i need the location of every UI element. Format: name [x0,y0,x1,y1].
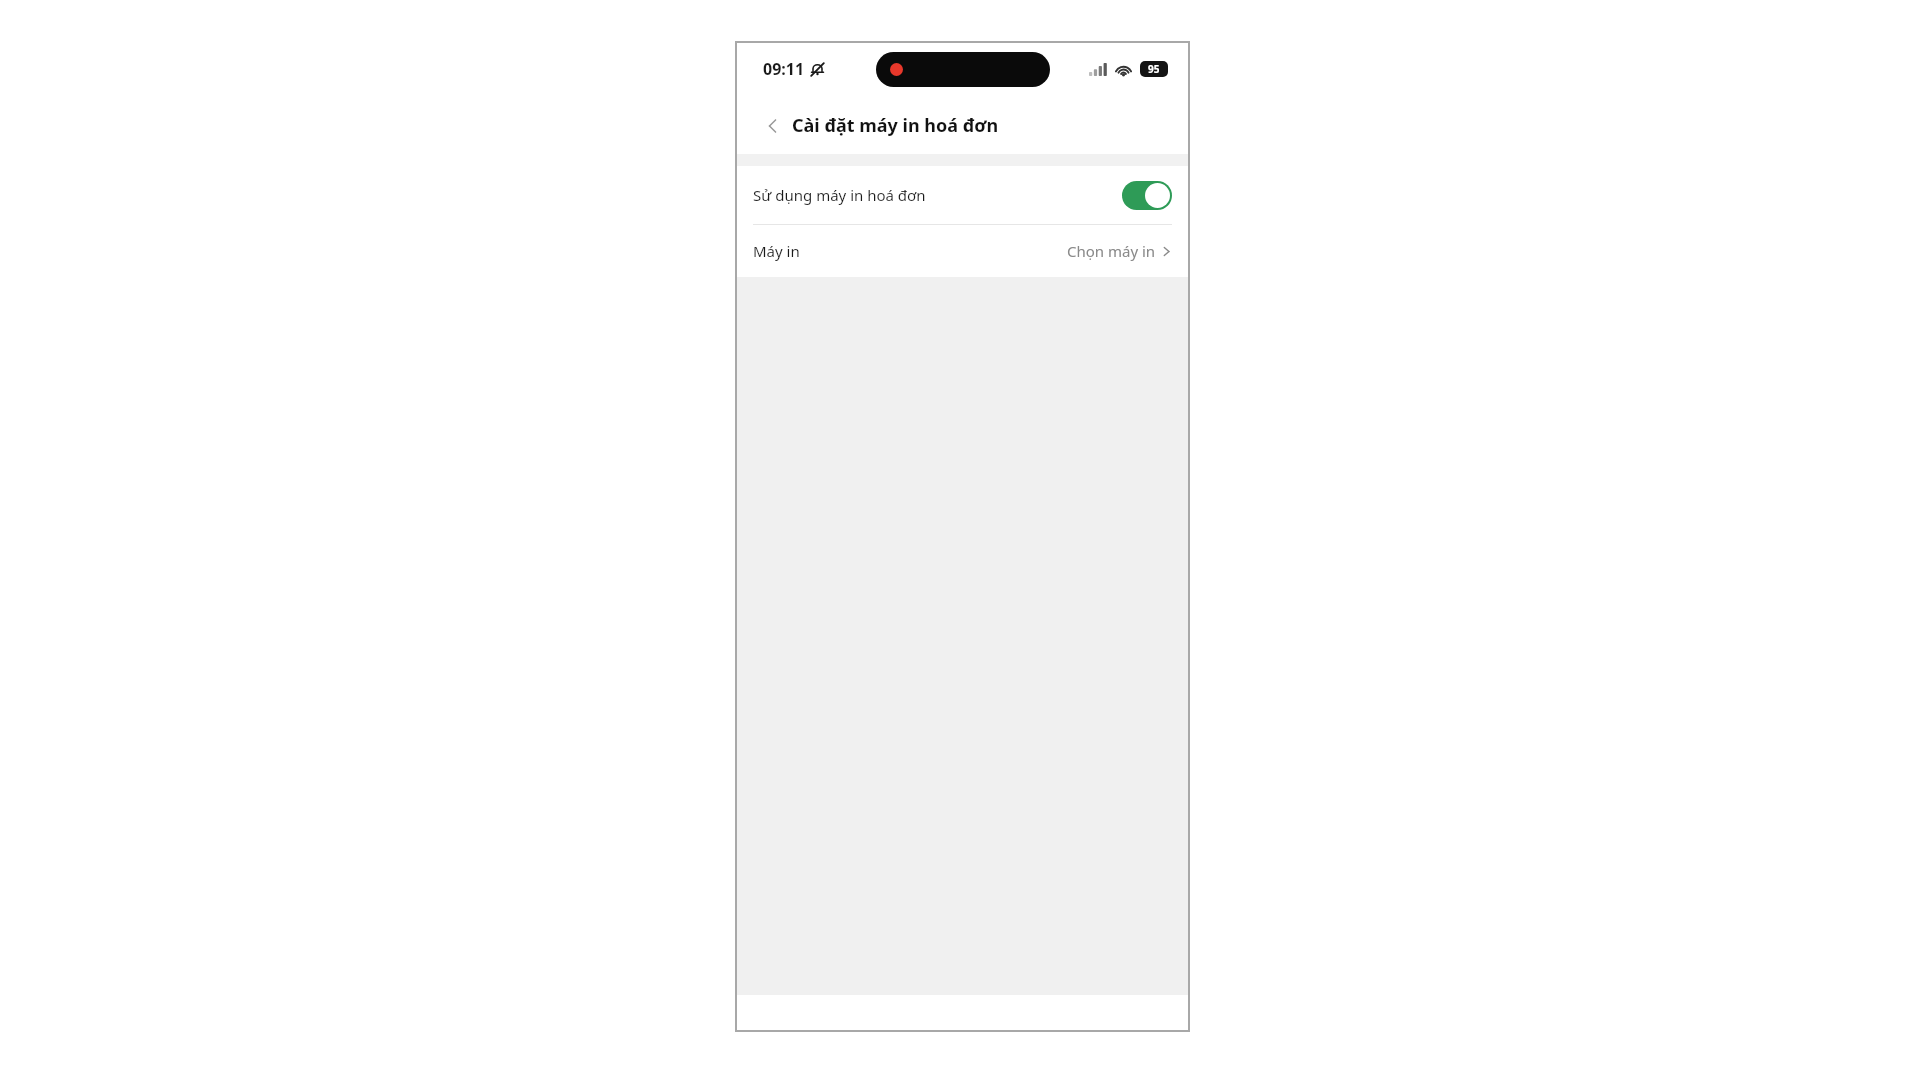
button[interactable]: Máy in [735,225,1190,277]
staticText: Sử dụng máy in hoá đơn [753,185,926,205]
staticText: Máy in [753,241,800,261]
button[interactable]: Sử dụng máy in hoá đơn [735,166,1190,224]
staticText: Chọn máy in [1067,241,1156,261]
staticText: 95 [1148,62,1160,76]
button[interactable]: Back [757,110,789,142]
staticText: 09:11 [763,58,805,80]
staticText: Cài đặt máy in hoá đơn [792,113,999,138]
button[interactable]: Toggle receipt printer [1122,181,1172,210]
